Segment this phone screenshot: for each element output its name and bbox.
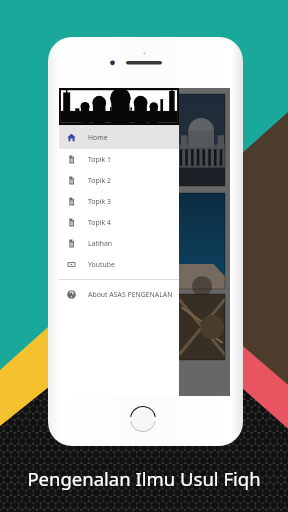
button[interactable]: Topik 1	[59, 149, 179, 170]
button[interactable]: Topik 2	[59, 170, 179, 191]
button[interactable]: About ASAS PENGENALAN	[59, 284, 179, 305]
button[interactable]: Latihan	[59, 233, 179, 254]
staticText: Topik 3	[88, 197, 111, 206]
button[interactable]	[64, 94, 225, 186]
staticText: Latihan	[88, 239, 113, 248]
button[interactable]: Youtube	[59, 254, 179, 275]
button[interactable]: Topik 3	[59, 191, 179, 212]
staticText: Topik 4	[88, 218, 111, 227]
staticText: Youtube	[88, 260, 115, 269]
staticText: Home	[88, 133, 108, 142]
staticText: Pengenalan Ilmu Usul Fiqh	[27, 466, 261, 491]
button[interactable]: Topik 4	[59, 212, 179, 233]
staticText: Topik 1	[88, 155, 111, 164]
button[interactable]: Home	[59, 125, 179, 149]
staticText: Topik 2	[88, 176, 111, 185]
button[interactable]	[64, 294, 225, 360]
button[interactable]	[64, 193, 225, 289]
staticText: About ASAS PENGENALAN	[88, 290, 173, 299]
